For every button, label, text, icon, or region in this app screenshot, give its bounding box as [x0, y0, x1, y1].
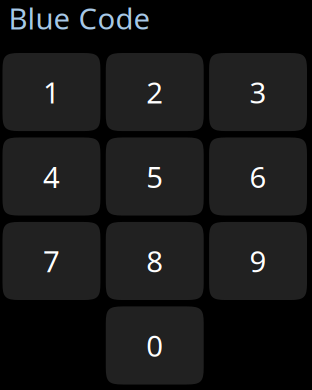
staticText: 4	[43, 157, 60, 196]
staticText: 5	[146, 157, 163, 196]
staticText: 3	[249, 73, 266, 112]
button[interactable]: 3	[209, 53, 307, 131]
button[interactable]: 2	[106, 53, 204, 131]
button[interactable]: 9	[209, 222, 307, 300]
button[interactable]: 8	[106, 222, 204, 300]
staticText: 7	[43, 241, 60, 280]
staticText: 9	[249, 241, 266, 280]
button[interactable]: 7	[2, 222, 100, 300]
button[interactable]: 0	[106, 306, 204, 384]
staticText: 6	[249, 157, 266, 196]
staticText: 2	[146, 73, 163, 112]
staticText: Blue Code	[9, 0, 151, 37]
button[interactable]: 6	[209, 137, 307, 216]
button[interactable]: 4	[2, 137, 100, 216]
button[interactable]: 5	[106, 137, 204, 216]
staticText: 8	[146, 241, 163, 280]
staticText: 0	[146, 326, 163, 365]
staticText: 1	[43, 73, 60, 112]
button[interactable]: 1	[2, 53, 100, 131]
